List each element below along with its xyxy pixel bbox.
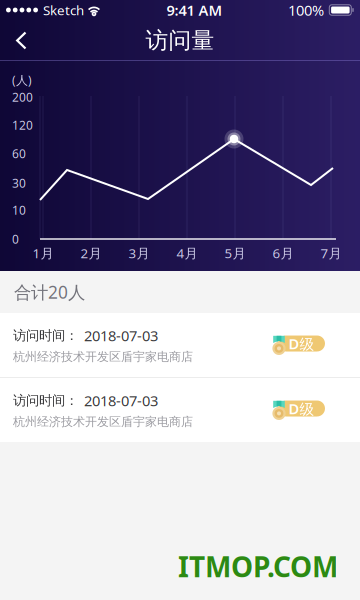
staticText: 访问时间：	[13, 327, 78, 344]
staticText: 5月	[224, 244, 245, 262]
staticText: 100%	[288, 0, 324, 20]
staticText: 2018-07-03	[84, 326, 158, 345]
staticText: 9:41 AM	[166, 0, 222, 20]
staticText: ITMOP.COM	[178, 548, 338, 585]
staticText: 30	[12, 175, 26, 191]
staticText: 7月	[320, 244, 341, 262]
staticText: 1月	[32, 244, 53, 262]
staticText: D级	[288, 334, 314, 353]
staticText: 杭州经济技术开发区盾宇家电商店	[13, 414, 193, 429]
staticText: 4月	[176, 244, 197, 262]
staticText: 200	[12, 89, 33, 105]
button[interactable]: Back	[0, 20, 41, 60]
staticText: Sketch	[43, 1, 84, 19]
staticText: 60	[12, 145, 26, 161]
staticText: D级	[288, 399, 314, 418]
staticText: 0	[12, 231, 19, 247]
staticText: 杭州经济技术开发区盾宇家电商店	[13, 349, 193, 364]
button[interactable]: 访问时间：	[0, 313, 360, 377]
staticText: 合计20人	[14, 280, 85, 303]
staticText: 10	[12, 202, 26, 218]
staticText: 2月	[80, 244, 101, 262]
staticText: (人)	[12, 72, 32, 88]
staticText: 6月	[272, 244, 293, 262]
staticText: 访问量	[145, 27, 214, 54]
staticText: 120	[12, 117, 33, 133]
button[interactable]: 访问时间：	[0, 378, 360, 442]
staticText: 2018-07-03	[84, 391, 158, 410]
staticText: 访问时间：	[13, 392, 78, 409]
staticText: 3月	[128, 244, 149, 262]
